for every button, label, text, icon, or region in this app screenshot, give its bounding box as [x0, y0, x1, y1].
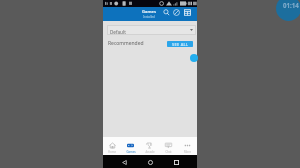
- staticText: Installed: [143, 15, 155, 19]
- button[interactable]: Privacy: [172, 8, 181, 17]
- button[interactable]: View options: [183, 8, 192, 17]
- staticText: SEE ALL: [172, 42, 189, 47]
- button[interactable]: Recents: [170, 156, 182, 168]
- button[interactable]: Home: [144, 156, 156, 168]
- button[interactable]: More: [178, 137, 197, 156]
- button[interactable]: SEE ALL: [167, 41, 193, 47]
- staticText: Games: [126, 150, 136, 154]
- button[interactable]: Chat: [159, 137, 178, 156]
- staticText: Games: [142, 9, 156, 15]
- staticText: 01:14: [283, 1, 299, 9]
- button[interactable]: Home: [103, 137, 121, 156]
- button[interactable]: Back: [118, 156, 130, 168]
- staticText: Chat: [165, 150, 172, 154]
- staticText: Arcade: [145, 150, 155, 154]
- button[interactable]: Search: [162, 8, 171, 17]
- button[interactable]: Default: [107, 25, 196, 35]
- staticText: Home: [108, 150, 116, 154]
- staticText: Recommended: [108, 40, 144, 47]
- button[interactable]: Action: [190, 54, 198, 62]
- button[interactable]: Arcade: [140, 137, 159, 156]
- staticText: Default: [110, 29, 126, 35]
- button[interactable]: Games: [121, 137, 140, 156]
- staticText: More: [184, 150, 191, 154]
